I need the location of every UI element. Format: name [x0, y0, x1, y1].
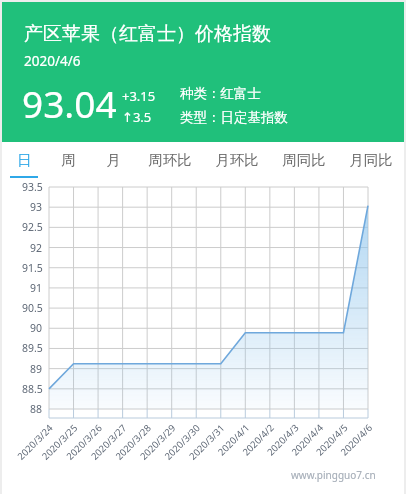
button[interactable]: 月	[91, 142, 136, 178]
button[interactable]: 周同比	[270, 142, 337, 178]
button[interactable]: 月同比	[337, 142, 404, 178]
button[interactable]: 月环比	[203, 142, 270, 178]
staticText: 日	[17, 151, 32, 169]
staticText: 月	[106, 151, 121, 169]
staticText: 种类：红富士	[180, 85, 261, 102]
staticText: 93.04	[22, 78, 117, 128]
staticText: 周环比	[148, 151, 192, 169]
button[interactable]: 日	[2, 142, 46, 178]
staticText: 2020/4/6	[24, 52, 81, 70]
staticText: 月环比	[215, 151, 259, 169]
staticText: +3.15	[122, 87, 156, 105]
staticText: 周	[61, 151, 76, 169]
staticText: 类型：日定基指数	[180, 109, 288, 126]
button[interactable]: 周	[46, 142, 91, 178]
staticText: 产区苹果（红富士）价格指数	[24, 22, 271, 46]
button[interactable]: 周环比	[136, 142, 203, 178]
staticText: ↑3.5	[122, 108, 152, 126]
staticText: 周同比	[282, 151, 326, 169]
staticText: 月同比	[349, 151, 393, 169]
